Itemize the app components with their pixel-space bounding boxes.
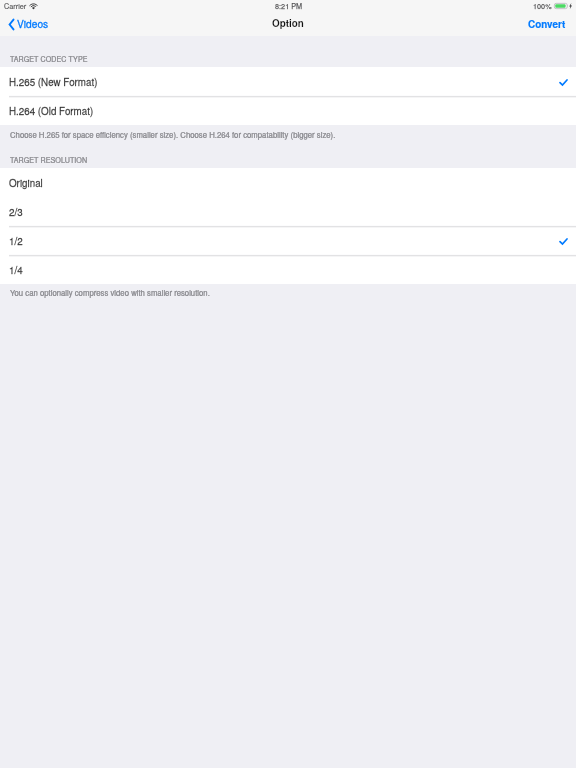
staticText: 100% bbox=[533, 1, 552, 11]
staticText: 1/4 bbox=[9, 263, 23, 277]
staticText: Videos bbox=[17, 16, 49, 31]
button[interactable]: H.264 (Old Format) bbox=[0, 96, 576, 125]
button[interactable]: 1/4 bbox=[0, 255, 576, 284]
staticText: Carrier bbox=[4, 1, 27, 11]
staticText: 1/2 bbox=[9, 234, 23, 248]
staticText: TARGET CODEC TYPE bbox=[10, 54, 88, 64]
staticText: 8:21 PM bbox=[275, 1, 303, 11]
staticText: Choose H.265 for space efficiency (small… bbox=[10, 129, 336, 140]
staticText: H.265 (New Format) bbox=[9, 75, 98, 89]
staticText: H.265 (New Format) bbox=[9, 75, 98, 89]
button[interactable]: Videos bbox=[0, 13, 55, 34]
staticText: TARGET RESOLUTION bbox=[10, 155, 88, 165]
staticText: Original bbox=[9, 176, 43, 190]
staticText: H.264 (Old Format) bbox=[9, 104, 94, 118]
other: Selected bbox=[560, 80, 567, 85]
staticText: Option bbox=[272, 16, 304, 30]
staticText: 100% bbox=[533, 1, 552, 11]
staticText: 2/3 bbox=[9, 205, 23, 219]
button[interactable]: Convert bbox=[517, 14, 576, 34]
button[interactable]: 1/2 bbox=[0, 226, 576, 255]
staticText: H.264 (Old Format) bbox=[9, 104, 94, 118]
staticText: You can optionally compress video with s… bbox=[10, 287, 210, 298]
staticText: 2/3 bbox=[9, 205, 23, 219]
button[interactable]: H.265 (New Format) bbox=[0, 67, 576, 96]
staticText: 8:21 PM bbox=[275, 1, 303, 11]
other: Selected bbox=[560, 239, 567, 244]
staticText: Choose H.265 for space efficiency (small… bbox=[10, 129, 336, 140]
staticText: Carrier bbox=[4, 1, 27, 11]
staticText: 1/4 bbox=[9, 263, 23, 277]
staticText: TARGET RESOLUTION bbox=[10, 155, 88, 165]
button[interactable]: Original bbox=[0, 168, 576, 197]
staticText: Convert bbox=[528, 17, 566, 31]
staticText: 1/2 bbox=[9, 234, 23, 248]
staticText: Videos bbox=[17, 16, 49, 31]
button[interactable]: 2/3 bbox=[0, 197, 576, 226]
staticText: TARGET CODEC TYPE bbox=[10, 54, 88, 64]
staticText: Convert bbox=[528, 17, 566, 31]
staticText: You can optionally compress video with s… bbox=[10, 287, 210, 298]
staticText: Original bbox=[9, 176, 43, 190]
